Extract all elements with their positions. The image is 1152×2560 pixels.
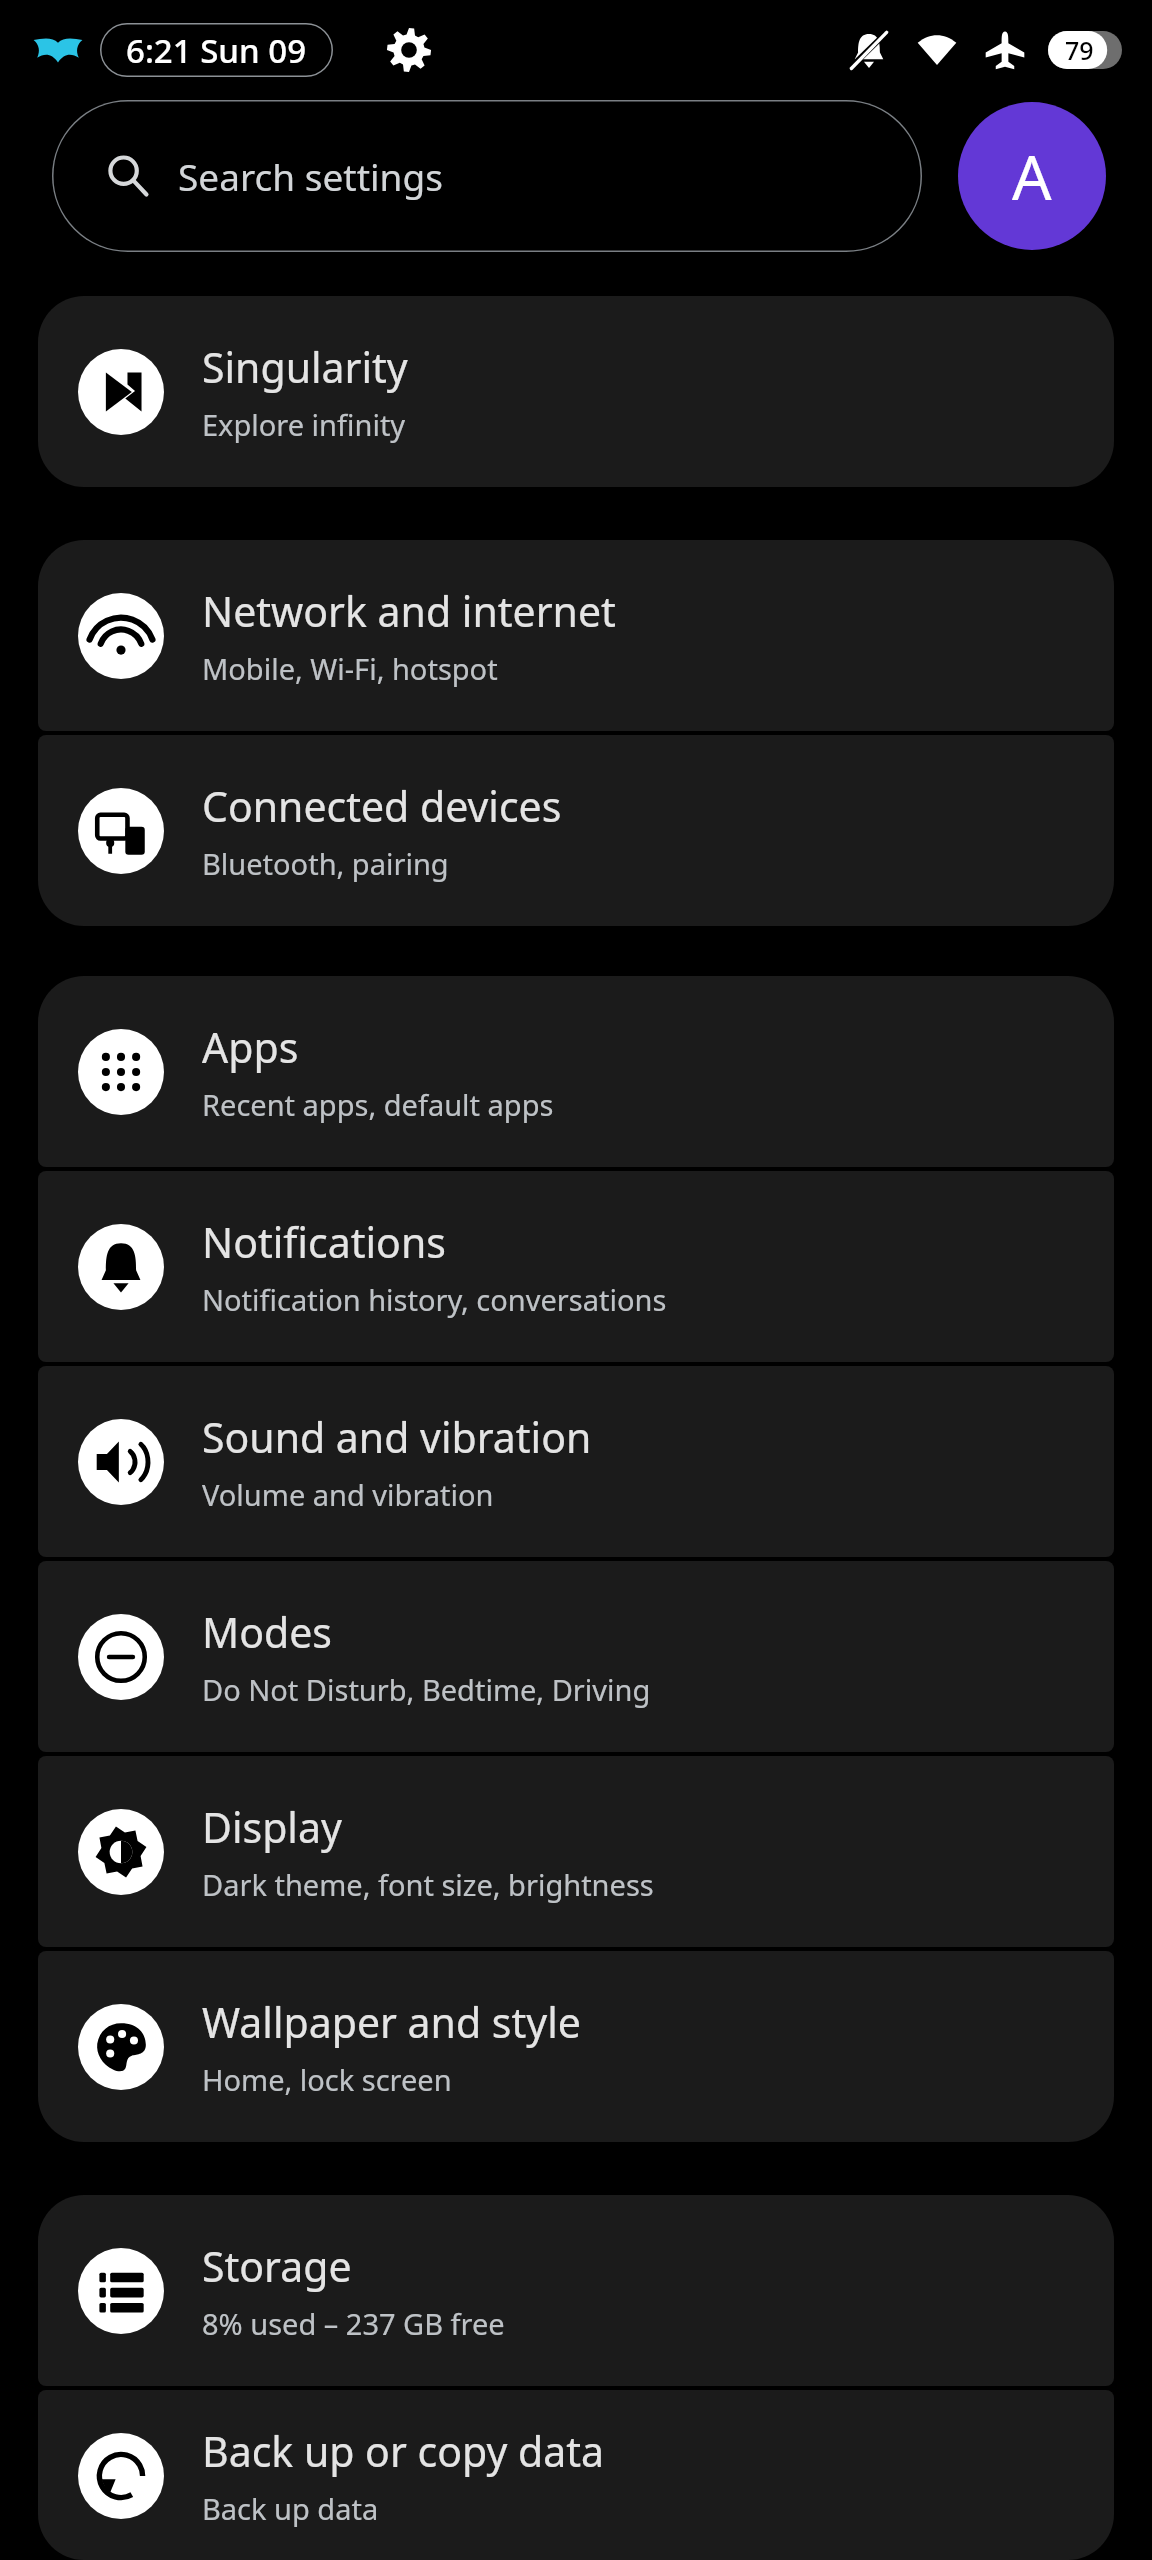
staticText: Sound and vibration — [202, 1409, 592, 1465]
staticText: 8% used – 237 GB free — [202, 2304, 505, 2343]
button[interactable]: Modes — [38, 1561, 1114, 1752]
button[interactable]: 6:21 Sun 09 — [100, 23, 333, 77]
button[interactable]: Storage — [38, 2195, 1114, 2386]
staticText: Home, lock screen — [202, 2060, 452, 2099]
staticText: Wallpaper and style — [202, 1994, 581, 2050]
staticText: Back up data — [202, 2489, 379, 2528]
staticText: Volume and vibration — [202, 1475, 494, 1514]
button[interactable]: Network and internet — [38, 540, 1114, 731]
button[interactable]: Settings — [386, 27, 432, 73]
button[interactable]: Search settings — [52, 100, 922, 252]
staticText: Bluetooth, pairing — [202, 844, 449, 883]
staticText: Explore infinity — [202, 405, 406, 444]
button[interactable]: Back up or copy data — [38, 2390, 1114, 2560]
button[interactable]: Wallpaper and style — [38, 1951, 1114, 2142]
staticText: Singularity — [202, 339, 408, 395]
staticText: Back up or copy data — [202, 2423, 604, 2479]
staticText: Network and internet — [202, 583, 616, 639]
button[interactable]: Sound and vibration — [38, 1366, 1114, 1557]
button[interactable]: Singularity — [38, 296, 1114, 487]
staticText: Display — [202, 1799, 342, 1855]
staticText: Connected devices — [202, 778, 562, 834]
staticText: Notifications — [202, 1214, 446, 1270]
staticText: 6:21 Sun 09 — [126, 28, 307, 73]
staticText: Notification history, conversations — [202, 1280, 667, 1319]
staticText: Storage — [202, 2238, 352, 2294]
staticText: Modes — [202, 1604, 332, 1660]
staticText: Do Not Disturb, Bedtime, Driving — [202, 1670, 651, 1709]
staticText: Dark theme, font size, brightness — [202, 1865, 654, 1904]
button[interactable]: Account — [958, 102, 1106, 250]
staticText: A — [1012, 134, 1052, 218]
staticText: Recent apps, default apps — [202, 1085, 554, 1124]
staticText: Search settings — [178, 151, 443, 201]
staticText: Apps — [202, 1019, 299, 1075]
staticText: 79 — [1065, 33, 1094, 67]
button[interactable]: Apps — [38, 976, 1114, 1167]
staticText: Mobile, Wi-Fi, hotspot — [202, 649, 498, 688]
button[interactable]: Notifications — [38, 1171, 1114, 1362]
button[interactable]: Display — [38, 1756, 1114, 1947]
button[interactable]: Connected devices — [38, 735, 1114, 926]
